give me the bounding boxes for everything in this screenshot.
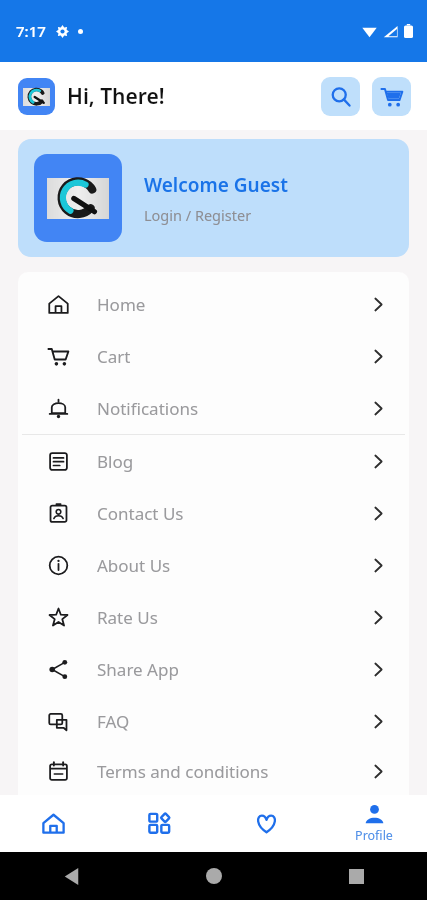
button[interactable]: About Us xyxy=(18,539,409,591)
button[interactable]: Terms and conditions xyxy=(18,747,409,795)
button[interactable]: FAQ xyxy=(18,695,409,747)
button[interactable]: Categories xyxy=(106,795,213,852)
button[interactable]: Share App xyxy=(18,643,409,695)
button[interactable]: Rate Us xyxy=(18,591,409,643)
button[interactable]: Welcome Guest xyxy=(18,139,409,257)
staticText: Welcome Guest xyxy=(144,172,288,198)
button[interactable]: Profile xyxy=(320,795,427,852)
staticText: FAQ xyxy=(97,710,130,733)
button[interactable]: Home xyxy=(0,795,106,852)
button[interactable]: Notifications xyxy=(18,382,409,434)
button[interactable]: Contact Us xyxy=(18,487,409,539)
staticText: Cart xyxy=(97,345,131,368)
staticText: Rate Us xyxy=(97,606,158,629)
button[interactable]: Home xyxy=(18,278,409,330)
staticText: Notifications xyxy=(97,397,199,420)
staticText: Share App xyxy=(97,658,179,681)
staticText: Profile xyxy=(355,827,393,844)
button[interactable]: Search xyxy=(321,77,360,116)
button[interactable]: Blog xyxy=(18,435,409,487)
staticText: Blog xyxy=(97,450,134,473)
staticText: About Us xyxy=(97,554,171,577)
staticText: Terms and conditions xyxy=(97,760,269,783)
button[interactable]: Cart xyxy=(18,330,409,382)
staticText: Contact Us xyxy=(97,502,184,525)
button[interactable]: Favorites xyxy=(213,795,320,852)
staticText: Hi, There! xyxy=(67,82,165,111)
button[interactable]: Cart xyxy=(372,77,411,116)
staticText: Home xyxy=(97,293,146,316)
staticText: Login / Register xyxy=(144,205,252,225)
staticText: 7:17 xyxy=(16,21,46,41)
